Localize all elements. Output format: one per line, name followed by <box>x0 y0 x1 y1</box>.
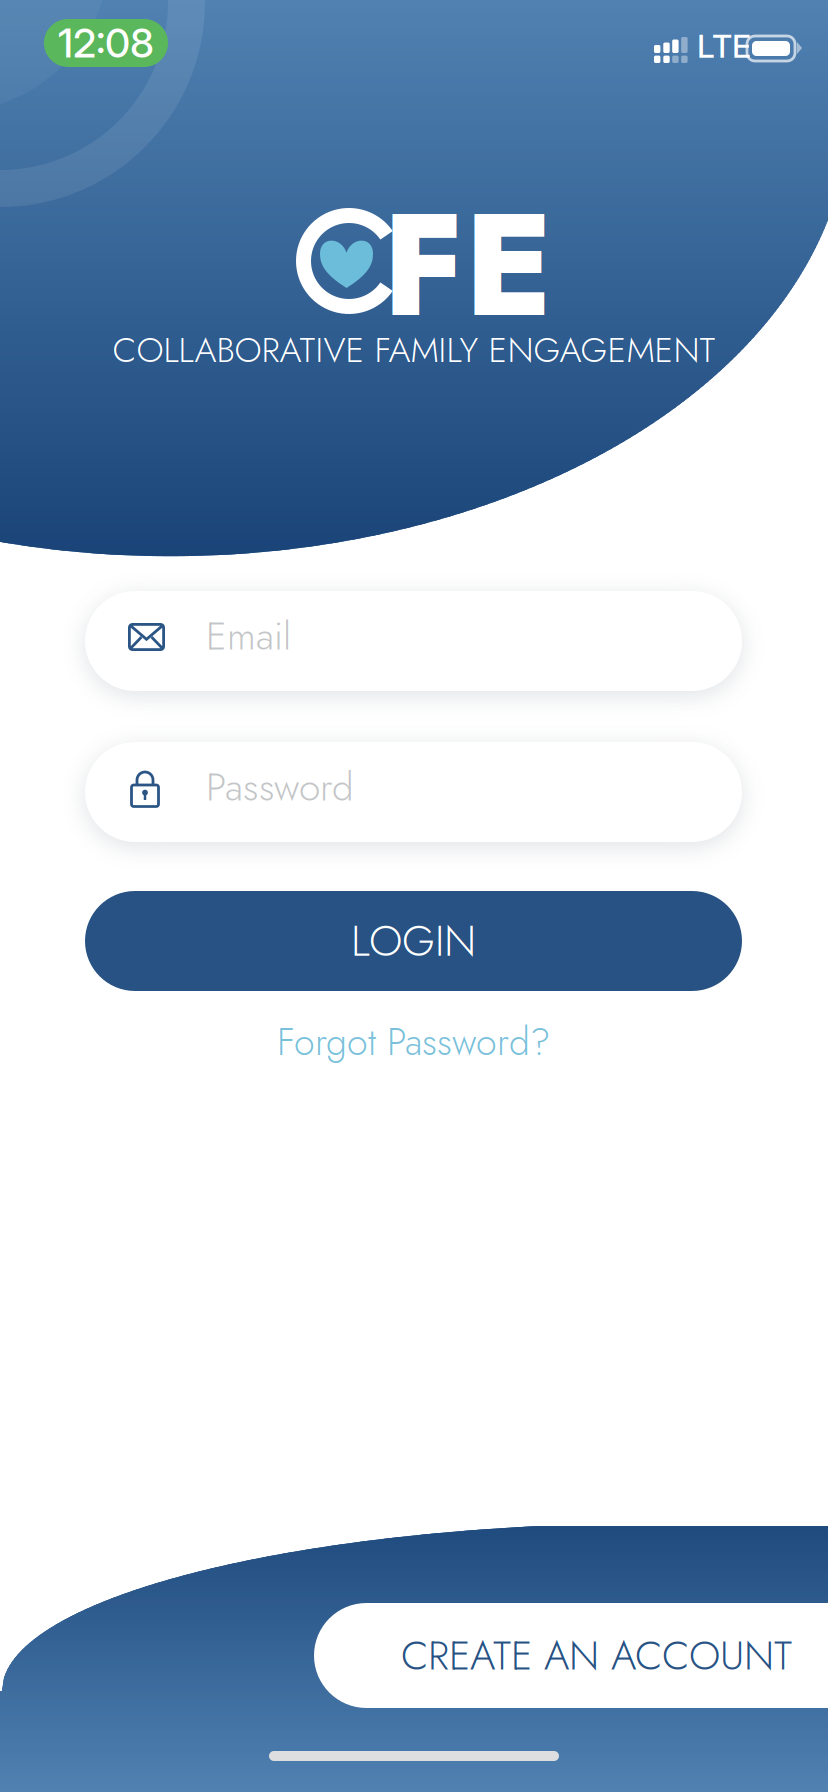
staticText: COLLABORATIVE FAMILY ENGAGEMENT <box>112 325 715 375</box>
staticText: Email <box>206 608 291 664</box>
button[interactable]: Forgot Password? <box>0 0 828 1792</box>
staticText: LOGIN <box>351 910 476 972</box>
staticText: Password <box>206 759 354 815</box>
staticText: FE <box>382 161 553 369</box>
button[interactable]: LOGIN <box>0 0 828 1792</box>
staticText: CREATE AN ACCOUNT <box>401 1627 792 1684</box>
staticText: Forgot Password? <box>277 1015 551 1069</box>
staticText: LTE <box>697 27 751 65</box>
button[interactable]: CREATE AN ACCOUNT <box>0 0 828 1792</box>
staticText: 12:08 <box>58 19 154 67</box>
